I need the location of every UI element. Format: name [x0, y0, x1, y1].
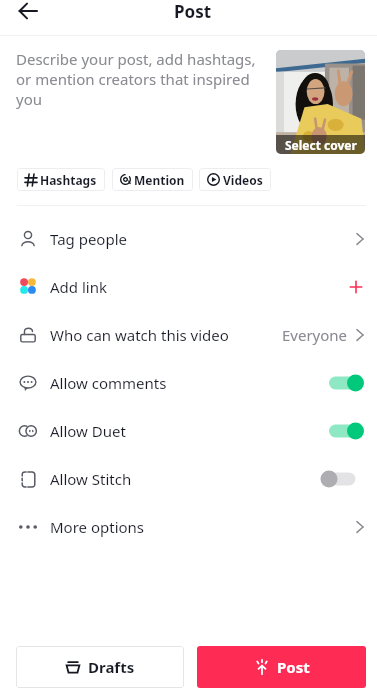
button[interactable]: Back [17, 0, 38, 21]
button[interactable]: Allow comments [0, 359, 377, 407]
staticText: Allow Stitch [50, 469, 132, 489]
staticText: More options [50, 517, 145, 537]
button[interactable]: Tag people [0, 215, 377, 263]
staticText: Videos [223, 172, 263, 188]
button[interactable]: Allow Stitch [0, 455, 377, 503]
button[interactable]: Drafts [16, 646, 184, 688]
staticText: Drafts [88, 657, 135, 677]
button[interactable]: Who can watch this video [0, 311, 377, 359]
staticText: Who can watch this video [50, 325, 229, 345]
staticText: Post [277, 657, 310, 677]
button[interactable]: Post [197, 646, 366, 688]
button[interactable]: Add link [0, 263, 377, 311]
staticText: Tag people [50, 229, 127, 249]
staticText: Mention [134, 172, 185, 188]
button[interactable]: Videos [199, 168, 271, 191]
staticText: Add link [50, 277, 107, 297]
staticText: Select cover [285, 137, 357, 153]
button[interactable]: Hashtags [17, 168, 105, 191]
button[interactable]: Allow Duet [0, 407, 377, 455]
staticText: Everyone [282, 325, 348, 345]
staticText: Hashtags [40, 172, 97, 188]
staticText: Describe your post, add hashtags, or men… [16, 49, 258, 109]
staticText: Allow comments [50, 373, 167, 393]
button[interactable]: More options [0, 503, 377, 551]
staticText: Post [174, 0, 212, 21]
staticText: Allow Duet [50, 421, 126, 441]
button[interactable]: Select cover [276, 50, 365, 154]
button[interactable]: Mention [112, 168, 193, 191]
